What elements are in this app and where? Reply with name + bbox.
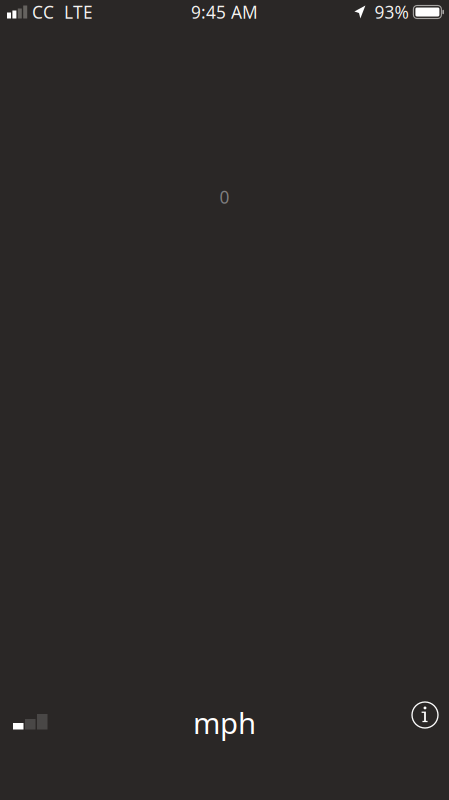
- staticText: LTE: [64, 0, 93, 23]
- staticText: CC: [32, 0, 54, 23]
- staticText: 9:45 AM: [191, 0, 258, 23]
- button[interactable]: mph: [193, 688, 256, 742]
- staticText: 93%: [374, 0, 408, 23]
- staticText: mph: [193, 703, 256, 742]
- button[interactable]: Info: [405, 695, 445, 735]
- staticText: 0: [219, 185, 229, 208]
